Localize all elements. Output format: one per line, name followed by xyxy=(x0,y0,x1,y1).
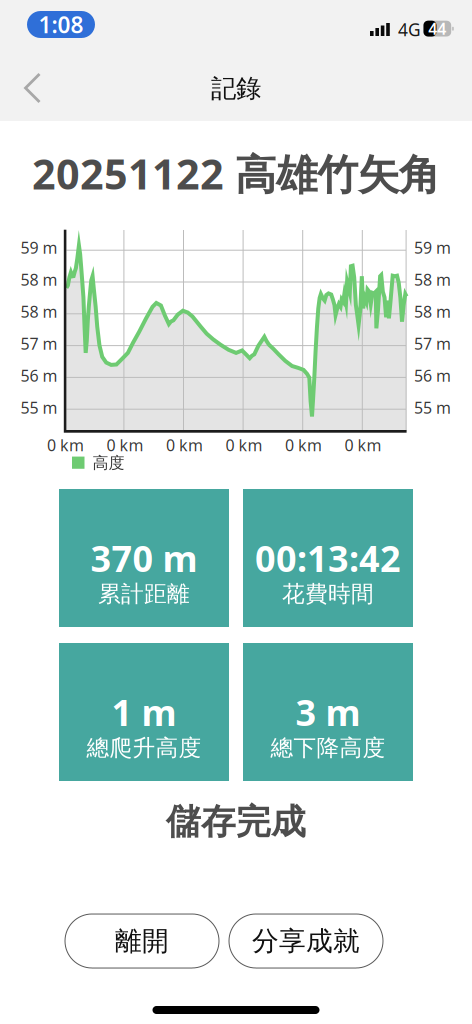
button[interactable]: Back xyxy=(9,58,55,117)
staticText: 記錄 xyxy=(211,73,261,104)
staticText: 總下降高度 xyxy=(270,734,385,762)
staticText: 0 km xyxy=(106,434,143,456)
staticText: 3 m xyxy=(295,688,360,736)
staticText: 44 xyxy=(428,18,446,39)
staticText: 58 m xyxy=(21,269,58,290)
staticText: 儲存完成 xyxy=(166,801,306,843)
staticText: 58 m xyxy=(414,301,451,322)
staticText: 1 m xyxy=(111,688,176,736)
button[interactable]: 3 m xyxy=(243,643,413,781)
staticText: 57 m xyxy=(414,333,451,354)
staticText: 4G xyxy=(398,18,421,41)
staticText: 總爬升高度 xyxy=(86,734,201,762)
staticText: 0 km xyxy=(285,434,322,456)
staticText: 58 m xyxy=(21,301,58,322)
button[interactable]: 00:13:42 xyxy=(243,489,413,627)
button[interactable]: 1 m xyxy=(59,643,229,781)
staticText: 0 km xyxy=(225,434,262,456)
staticText: 55 m xyxy=(21,397,58,418)
staticText: 離開 xyxy=(115,925,169,957)
staticText: 花費時間 xyxy=(282,580,374,608)
button[interactable]: 分享成就 xyxy=(229,914,383,968)
staticText: 57 m xyxy=(21,333,58,354)
staticText: 20251122 高雄竹矢角 xyxy=(32,146,440,201)
staticText: 58 m xyxy=(414,269,451,290)
button[interactable]: 370 m xyxy=(59,489,229,627)
staticText: 分享成就 xyxy=(252,925,360,957)
staticText: 0 km xyxy=(166,434,203,456)
staticText: 56 m xyxy=(21,365,58,386)
staticText: 00:13:42 xyxy=(255,534,401,582)
staticText: 高度 xyxy=(92,453,124,473)
staticText: 59 m xyxy=(414,237,451,258)
staticText: 59 m xyxy=(21,237,58,258)
staticText: 370 m xyxy=(90,534,197,582)
staticText: 55 m xyxy=(414,397,451,418)
staticText: 0 km xyxy=(47,434,84,456)
button[interactable]: 離開 xyxy=(65,914,219,968)
staticText: 56 m xyxy=(414,365,451,386)
staticText: 1:08 xyxy=(38,9,83,39)
staticText: 0 km xyxy=(344,434,381,456)
staticText: 累計距離 xyxy=(98,580,190,608)
